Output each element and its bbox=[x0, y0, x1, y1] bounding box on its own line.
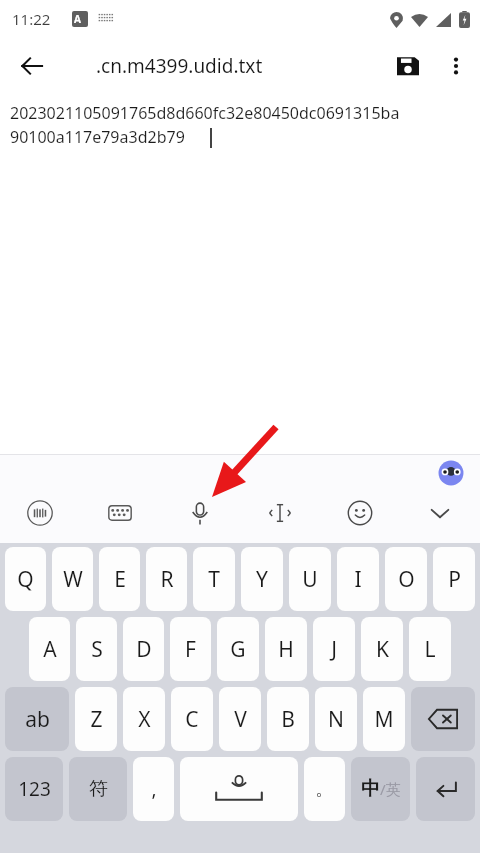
button[interactable]: K bbox=[361, 617, 403, 681]
staticText: I bbox=[354, 565, 362, 594]
staticText: 2023021105091765d8d660fc32e80450dc069131… bbox=[10, 102, 400, 148]
staticText: P bbox=[448, 565, 461, 594]
staticText: A bbox=[74, 12, 81, 26]
staticText: U bbox=[302, 565, 318, 594]
button[interactable]: A bbox=[29, 617, 70, 681]
staticText: M bbox=[374, 705, 394, 734]
staticText: 11:22 bbox=[12, 9, 51, 29]
button[interactable]: T bbox=[193, 547, 235, 611]
button[interactable]: 中/英 bbox=[351, 757, 410, 821]
button[interactable]: G bbox=[217, 617, 259, 681]
button[interactable]: Q bbox=[5, 547, 46, 611]
button[interactable]: , bbox=[133, 757, 174, 821]
button[interactable]: L bbox=[409, 617, 451, 681]
button[interactable]: B bbox=[267, 687, 309, 751]
button[interactable]: Enter bbox=[416, 757, 475, 821]
staticText: R bbox=[160, 565, 174, 594]
staticText: G bbox=[230, 635, 246, 664]
staticText: J bbox=[331, 635, 337, 664]
staticText: F bbox=[185, 635, 196, 664]
staticText: N bbox=[328, 705, 344, 734]
button[interactable]: S bbox=[76, 617, 117, 681]
staticText: O bbox=[398, 565, 415, 594]
staticText: Q bbox=[17, 565, 34, 594]
button[interactable]: V bbox=[219, 687, 261, 751]
button[interactable]: Backspace bbox=[411, 687, 475, 751]
button[interactable]: 123 bbox=[5, 757, 63, 821]
staticText: A bbox=[43, 635, 57, 664]
staticText: X bbox=[138, 705, 151, 734]
button[interactable]: O bbox=[385, 547, 427, 611]
button[interactable]: Back bbox=[8, 42, 56, 90]
staticText: Z bbox=[90, 705, 103, 734]
button[interactable]: X bbox=[123, 687, 165, 751]
staticText: Y bbox=[256, 565, 268, 594]
staticText: C bbox=[185, 705, 199, 734]
button[interactable]: M bbox=[363, 687, 405, 751]
staticText: .cn.m4399.udid.txt bbox=[96, 53, 263, 79]
button[interactable]: F bbox=[170, 617, 211, 681]
button[interactable]: C bbox=[171, 687, 213, 751]
button[interactable]: Hide keyboard bbox=[400, 483, 480, 543]
button[interactable]: U bbox=[289, 547, 331, 611]
button[interactable]: H bbox=[265, 617, 307, 681]
button[interactable]: Keyboard bbox=[80, 483, 160, 543]
staticText: T bbox=[208, 565, 220, 594]
staticText: , bbox=[151, 776, 157, 802]
button[interactable]: D bbox=[123, 617, 164, 681]
button[interactable]: Assistant bbox=[438, 460, 464, 486]
button[interactable]: 符 bbox=[69, 757, 127, 821]
staticText: 中/英 bbox=[361, 777, 401, 801]
button[interactable]: 2023021105091765d8d660fc32e80450dc069131… bbox=[10, 102, 470, 845]
button[interactable]: Emoji bbox=[320, 483, 400, 543]
staticText: B bbox=[281, 705, 295, 734]
staticText: 。 bbox=[315, 777, 334, 801]
staticText: 符 bbox=[89, 777, 108, 801]
button[interactable]: J bbox=[313, 617, 355, 681]
staticText: L bbox=[424, 635, 436, 664]
button[interactable]: R bbox=[146, 547, 187, 611]
staticText: ab bbox=[25, 705, 50, 734]
button[interactable]: W bbox=[52, 547, 93, 611]
button[interactable]: Move cursor bbox=[240, 483, 320, 543]
staticText: D bbox=[136, 635, 152, 664]
button[interactable]: Voice input bbox=[160, 483, 240, 543]
button[interactable]: Input method bbox=[0, 483, 80, 543]
staticText: W bbox=[63, 565, 83, 594]
button[interactable]: E bbox=[99, 547, 140, 611]
staticText: E bbox=[114, 565, 126, 594]
button[interactable]: Y bbox=[241, 547, 283, 611]
button[interactable]: I bbox=[337, 547, 379, 611]
staticText: H bbox=[278, 635, 294, 664]
staticText: V bbox=[234, 705, 247, 734]
button[interactable]: P bbox=[433, 547, 475, 611]
button[interactable]: Space bbox=[180, 757, 298, 821]
button[interactable]: Z bbox=[75, 687, 117, 751]
staticText: S bbox=[91, 635, 103, 664]
button[interactable]: N bbox=[315, 687, 357, 751]
staticText: 123 bbox=[18, 776, 51, 802]
button[interactable]: Save bbox=[384, 42, 432, 90]
button[interactable]: More options bbox=[432, 42, 480, 90]
button[interactable]: ab bbox=[5, 687, 69, 751]
staticText: K bbox=[376, 635, 389, 664]
button[interactable]: 。 bbox=[304, 757, 345, 821]
